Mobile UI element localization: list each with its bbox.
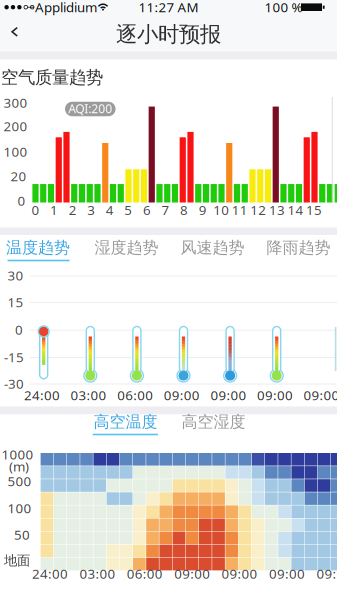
staticText: 高空湿度 — [181, 412, 245, 432]
staticText: 09:00 — [164, 386, 200, 404]
staticText: 09:00 — [210, 386, 246, 404]
staticText: 温度趋势 — [6, 238, 70, 258]
staticText: 100 — [3, 143, 27, 160]
staticText: 高空温度 — [93, 412, 157, 432]
staticText: 1000 — [1, 445, 33, 463]
staticText: 4 — [106, 201, 114, 219]
staticText: Applidium — [35, 0, 97, 16]
staticText: 11 — [232, 201, 248, 219]
button[interactable]: 湿度趋势 — [86, 235, 166, 261]
button[interactable]: Back — [3, 21, 25, 43]
staticText: 09:00 — [222, 565, 258, 582]
button[interactable]: 高空温度 — [85, 409, 165, 435]
staticText: 10 — [213, 201, 229, 219]
staticText: 0 — [31, 201, 39, 219]
staticText: 500 — [7, 472, 31, 490]
staticText: 8 — [180, 201, 188, 219]
staticText: 12 — [250, 201, 266, 219]
staticText: 1 — [50, 201, 58, 219]
staticText: 20 — [10, 167, 26, 185]
staticText: 0 — [17, 192, 25, 209]
staticText: 地面 — [4, 552, 30, 569]
staticText: 2 — [69, 201, 77, 219]
staticText: 06:00 — [127, 565, 163, 582]
staticText: 0 — [15, 321, 23, 338]
staticText: 09:00 — [304, 386, 337, 404]
staticText: 6 — [143, 201, 151, 219]
staticText: 15 — [7, 293, 23, 311]
button[interactable]: 温度趋势 — [0, 235, 78, 261]
staticText: -15 — [4, 348, 24, 366]
staticText: 5 — [124, 201, 132, 219]
staticText: (m) — [9, 457, 29, 475]
staticText: 50 — [14, 526, 30, 543]
staticText: 11:27 AM — [138, 0, 198, 16]
staticText: 逐小时预报 — [116, 21, 221, 48]
staticText: 03:00 — [79, 565, 115, 582]
staticText: -30 — [4, 375, 24, 392]
staticText: 风速趋势 — [180, 238, 244, 258]
button[interactable]: 降雨趋势 — [258, 235, 337, 261]
staticText: 13 — [269, 201, 285, 219]
staticText: 03:00 — [71, 386, 107, 404]
staticText: 7 — [161, 201, 169, 219]
staticText: 24:00 — [24, 386, 60, 404]
staticText: 100 — [7, 499, 31, 517]
staticText: 30 — [7, 266, 23, 284]
staticText: 15 — [306, 201, 322, 219]
staticText: AQI:200 — [68, 101, 112, 117]
staticText: 9 — [199, 201, 207, 219]
staticText: 3 — [87, 201, 95, 219]
staticText: 06:00 — [117, 386, 153, 404]
staticText: 湿度趋势 — [94, 238, 158, 258]
button[interactable]: 高空湿度 — [173, 409, 253, 435]
staticText: 200 — [3, 117, 27, 135]
staticText: 09:00 — [174, 565, 210, 582]
staticText: 14 — [287, 201, 303, 219]
staticText: 09:00 — [316, 565, 337, 582]
staticText: 300 — [3, 94, 27, 111]
button[interactable]: 风速趋势 — [172, 235, 252, 261]
staticText: 降雨趋势 — [266, 238, 330, 258]
staticText: 09:00 — [257, 386, 293, 404]
staticText: 09:00 — [269, 565, 305, 582]
staticText: 空气质量趋势 — [1, 67, 103, 88]
staticText: 100 % — [264, 0, 302, 16]
staticText: 24:00 — [32, 565, 68, 582]
